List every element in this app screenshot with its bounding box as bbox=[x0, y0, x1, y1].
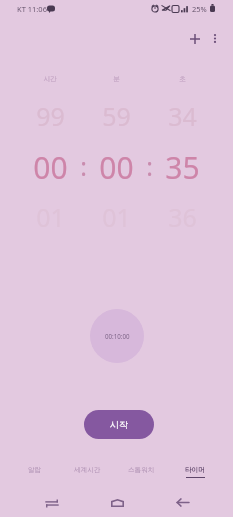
staticText: 00:10:00 bbox=[105, 332, 130, 340]
staticText: 세계시간 bbox=[74, 466, 101, 474]
staticText: 00 bbox=[33, 147, 68, 188]
staticText: 59 bbox=[102, 99, 131, 133]
staticText: 99 bbox=[36, 99, 65, 133]
staticText: 타이머 bbox=[185, 466, 205, 474]
button[interactable]: More options bbox=[200, 24, 229, 53]
staticText: : bbox=[146, 149, 153, 183]
staticText: 초 bbox=[179, 75, 186, 83]
button[interactable]: 세계시간 bbox=[61, 466, 114, 484]
button[interactable]: Add timer bbox=[180, 24, 209, 53]
staticText: 00 bbox=[99, 147, 134, 188]
staticText: 34 bbox=[168, 99, 197, 133]
staticText: : bbox=[80, 149, 87, 183]
button[interactable]: 시작 bbox=[84, 410, 154, 439]
staticText: 분 bbox=[113, 75, 120, 83]
button[interactable]: Recent apps bbox=[36, 487, 68, 517]
button[interactable]: 00:10:00 bbox=[90, 309, 144, 363]
button[interactable]: Back bbox=[166, 486, 198, 517]
button[interactable]: 타이머 bbox=[168, 466, 222, 484]
staticText: 스톱워치 bbox=[128, 466, 155, 474]
staticText: 알람 bbox=[28, 466, 42, 474]
button[interactable]: Home bbox=[101, 487, 133, 517]
staticText: 35 bbox=[165, 147, 200, 188]
button[interactable]: 알람 bbox=[8, 466, 61, 484]
button[interactable]: 스톱워치 bbox=[114, 466, 168, 484]
staticText: KT 11:06 bbox=[17, 4, 47, 14]
staticText: 25% bbox=[192, 4, 207, 14]
staticText: 시간 bbox=[43, 75, 57, 83]
staticText: 시작 bbox=[110, 419, 128, 430]
